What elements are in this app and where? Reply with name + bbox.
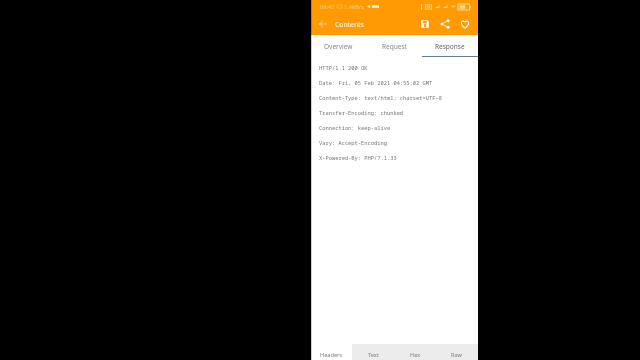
staticText: Response xyxy=(435,42,465,51)
button[interactable]: Save xyxy=(415,14,435,34)
button[interactable]: Overview xyxy=(311,35,366,57)
button[interactable]: Transfer-Encoding: chunked xyxy=(311,105,478,120)
button[interactable]: Text xyxy=(352,344,394,360)
button[interactable]: Date: Fri, 05 Feb 2021 04:55:02 GMT xyxy=(311,75,478,90)
staticText: Overview xyxy=(324,42,353,51)
staticText: Headers xyxy=(320,351,343,359)
button[interactable]: Vary: Accept-Encoding xyxy=(311,135,478,150)
button[interactable]: Content-Type: text/html; charset=UTF-8 xyxy=(311,90,478,105)
staticText: Connection: keep-alive xyxy=(319,124,391,131)
staticText: Contents xyxy=(335,20,364,29)
staticText: Vary: Accept-Encoding xyxy=(319,139,387,146)
button[interactable]: Share xyxy=(435,14,455,34)
staticText: Raw xyxy=(451,351,463,359)
button[interactable]: Connection: keep-alive xyxy=(311,120,478,135)
button[interactable]: Back xyxy=(311,13,335,35)
button[interactable]: Response xyxy=(422,35,478,57)
button[interactable]: X-Powered-By: PHP/7.1.33 xyxy=(311,150,478,165)
staticText: Request xyxy=(382,42,407,51)
button[interactable]: Favorite xyxy=(455,14,475,34)
button[interactable]: HTTP/1.1 200 OK xyxy=(311,60,478,75)
staticText: Content-Type: text/html; charset=UTF-8 xyxy=(319,94,442,101)
button[interactable]: Headers xyxy=(311,344,352,360)
button[interactable]: Raw xyxy=(436,344,478,360)
staticText: HTTP/1.1 200 OK xyxy=(319,64,368,71)
button[interactable]: Request xyxy=(366,35,422,57)
staticText: X-Powered-By: PHP/7.1.33 xyxy=(319,154,397,161)
staticText: Hex xyxy=(410,351,421,359)
staticText: Text xyxy=(368,351,379,359)
staticText: 09:42 xyxy=(320,3,335,11)
button[interactable]: Hex xyxy=(394,344,436,360)
staticText: 1.4KB/s xyxy=(344,3,364,11)
staticText: Date: Fri, 05 Feb 2021 04:55:02 GMT xyxy=(319,79,433,86)
staticText: Transfer-Encoding: chunked xyxy=(319,109,404,116)
